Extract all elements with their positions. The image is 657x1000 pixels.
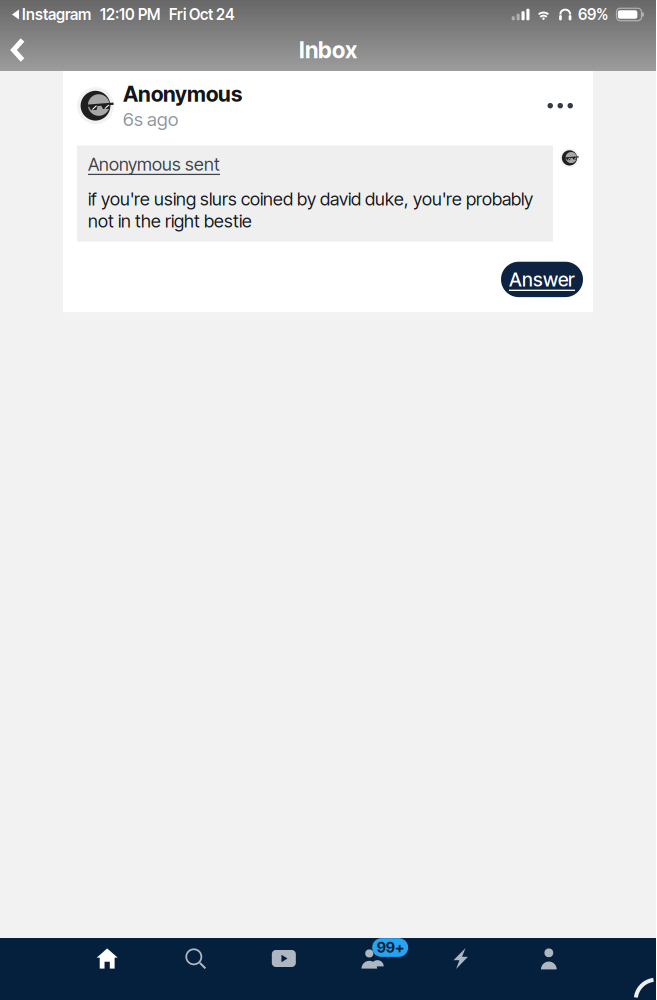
button[interactable]: Search	[151, 938, 240, 979]
staticText: Instagram	[19, 5, 91, 24]
button[interactable]: Videos	[240, 938, 328, 979]
staticText: if you're using slurs coined by david du…	[88, 188, 533, 232]
button[interactable]: Back	[0, 29, 43, 71]
button[interactable]: Inbox, 99 plus unread	[328, 938, 416, 979]
staticText: Inbox	[299, 36, 357, 64]
staticText: Answer	[509, 268, 575, 291]
staticText: 99+	[377, 939, 404, 956]
staticText: 6s ago	[123, 108, 178, 130]
staticText: Anonymous sent	[88, 153, 220, 175]
staticText: Anonymous	[123, 81, 242, 107]
staticText: Fri Oct 24	[160, 5, 235, 24]
staticText: 12:10 PM	[91, 5, 160, 24]
button[interactable]: Profile	[505, 938, 593, 979]
button[interactable]: Activity	[416, 938, 505, 979]
button[interactable]: More options	[536, 90, 584, 121]
button[interactable]: Home	[63, 938, 151, 979]
button[interactable]: Answer	[501, 262, 583, 297]
staticText: 69%	[572, 5, 608, 24]
